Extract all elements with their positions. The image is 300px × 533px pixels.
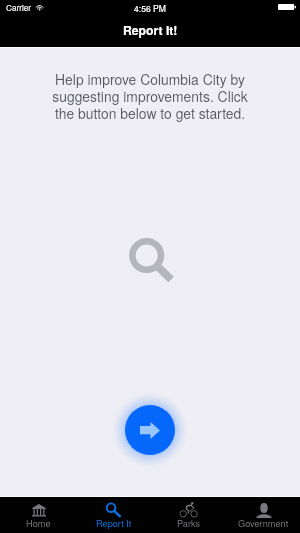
staticText: 4:56 PM	[134, 2, 167, 14]
staticText: Carrier	[6, 2, 32, 14]
button[interactable]: Government	[225, 497, 300, 533]
staticText: Help improve Columbia City by suggesting…	[48, 69, 252, 122]
button[interactable]: Get started	[125, 405, 175, 455]
staticText: Government	[238, 516, 289, 529]
staticText: Report It!	[123, 21, 178, 38]
staticText: Report It	[96, 516, 132, 529]
button[interactable]: Parks	[150, 497, 225, 533]
button[interactable]: Home	[0, 497, 75, 533]
staticText: Home	[26, 516, 51, 529]
button[interactable]: Report It	[75, 497, 150, 533]
staticText: Parks	[177, 516, 201, 529]
